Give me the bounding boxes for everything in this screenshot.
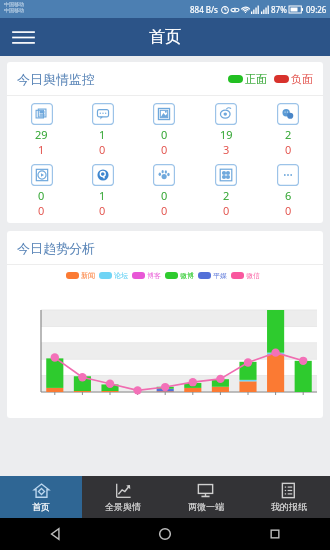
button[interactable]: paw bbox=[133, 164, 195, 218]
staticText: 0 bbox=[161, 142, 168, 157]
button[interactable]: p bbox=[72, 164, 133, 218]
staticText: 中国移动 bbox=[4, 7, 24, 13]
button[interactable]: forum bbox=[72, 103, 133, 157]
staticText: 0 bbox=[161, 127, 168, 142]
button[interactable]: flower bbox=[195, 164, 257, 218]
staticText: 首页 bbox=[149, 27, 181, 47]
staticText: 首页 bbox=[32, 501, 50, 512]
button[interactable]: 我的报纸 bbox=[247, 476, 330, 518]
button[interactable]: Home bbox=[110, 518, 220, 550]
staticText: 0 bbox=[285, 203, 292, 218]
staticText: 0 bbox=[99, 142, 106, 157]
staticText: 正面 bbox=[245, 72, 267, 86]
staticText: 今日舆情监控 bbox=[17, 71, 95, 87]
staticText: 09:26 bbox=[306, 4, 327, 15]
staticText: 我的报纸 bbox=[271, 501, 307, 512]
staticText: 0 bbox=[38, 188, 45, 203]
staticText: 负面 bbox=[291, 72, 313, 86]
button[interactable]: Recents bbox=[220, 518, 330, 550]
staticText: 微博 bbox=[180, 271, 194, 280]
staticText: 新闻 bbox=[81, 271, 95, 280]
staticText: 微信 bbox=[246, 271, 260, 280]
staticText: 0 bbox=[161, 188, 168, 203]
staticText: 0 bbox=[223, 203, 230, 218]
button[interactable]: Menu bbox=[8, 22, 38, 52]
button[interactable]: blog bbox=[133, 103, 195, 157]
staticText: 6 bbox=[285, 188, 292, 203]
button[interactable]: news bbox=[11, 103, 72, 157]
button[interactable]: Back bbox=[0, 518, 110, 550]
staticText: 0 bbox=[99, 203, 106, 218]
button[interactable]: video bbox=[11, 164, 72, 218]
staticText: 29 bbox=[35, 127, 48, 142]
staticText: 中国移动 bbox=[4, 1, 24, 7]
staticText: 平媒 bbox=[213, 271, 227, 280]
staticText: 2 bbox=[285, 127, 292, 142]
button[interactable]: weibo bbox=[195, 103, 257, 157]
staticText: 0 bbox=[38, 203, 45, 218]
staticText: 3 bbox=[223, 142, 230, 157]
staticText: 0 bbox=[161, 203, 168, 218]
staticText: 博客 bbox=[147, 271, 161, 280]
staticText: 0 bbox=[285, 142, 292, 157]
staticText: 两微一端 bbox=[188, 501, 224, 512]
staticText: 今日趋势分析 bbox=[17, 240, 95, 256]
staticText: 1 bbox=[99, 127, 106, 142]
button[interactable]: 两微一端 bbox=[164, 476, 247, 518]
button[interactable]: more bbox=[257, 164, 319, 218]
staticText: 全景舆情 bbox=[105, 501, 141, 512]
staticText: 1 bbox=[99, 188, 106, 203]
staticText: 2 bbox=[223, 188, 230, 203]
staticText: 论坛 bbox=[114, 271, 128, 280]
staticText: 884 B/s bbox=[190, 4, 218, 15]
staticText: 1 bbox=[38, 142, 45, 157]
staticText: 87% bbox=[271, 4, 287, 15]
staticText: 19 bbox=[220, 127, 233, 142]
button[interactable]: wechat bbox=[257, 103, 319, 157]
button[interactable]: 首页 bbox=[0, 476, 82, 518]
button[interactable]: 全景舆情 bbox=[82, 476, 164, 518]
